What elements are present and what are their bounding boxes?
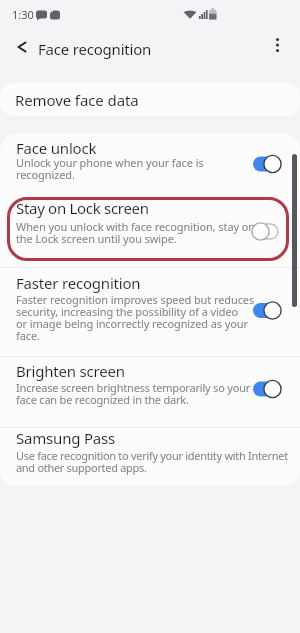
staticText: Brighten screen [16,361,125,381]
staticText: Stay on Lock screen [16,198,149,218]
staticText: Samsung Pass [16,428,115,448]
staticText: When you unlock with face recognition, s… [16,219,255,246]
staticText: Face unlock [16,138,97,158]
staticText: Faster recognition [16,273,141,293]
staticText: Increase screen brightness temporarily s… [16,380,251,407]
staticText: Face recognition [38,39,152,59]
staticText: Remove face data [15,90,139,110]
staticText: Use face recognition to verify your iden… [16,448,288,475]
staticText: 1:30 [12,7,34,22]
staticText: Faster recognition improves speed but re… [16,292,255,343]
staticText: Unlock your phone when your face is reco… [16,155,204,182]
